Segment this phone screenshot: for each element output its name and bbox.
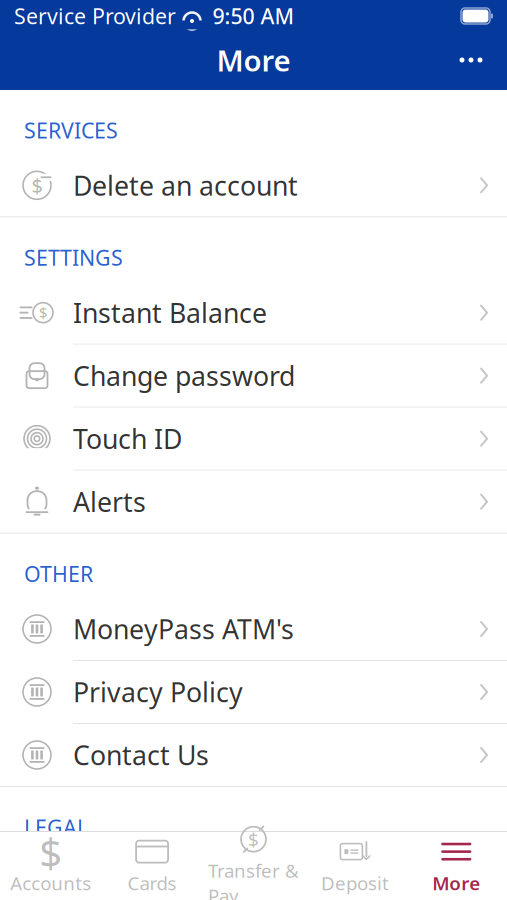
button[interactable]: More [406,832,507,900]
staticText: OTHER [24,560,93,588]
staticText: MoneyPass ATM's [73,611,294,647]
staticText: Service Provider [14,2,176,30]
button[interactable]: Deposit [304,832,406,900]
staticText: Privacy Policy [73,674,243,710]
staticText: Transfer & Pay [208,858,299,900]
staticText: Contact Us [73,737,209,773]
staticText: Touch ID [73,421,182,456]
button[interactable]: $ [0,154,507,216]
staticText: More [432,871,480,895]
staticText: LEGAL [24,813,88,841]
staticText: Change password [73,358,295,393]
staticText: Alerts [73,484,146,519]
button[interactable]: Change password [0,345,507,407]
staticText: $ [31,172,42,199]
staticText: More [216,40,290,79]
staticText: Accounts [10,871,91,895]
staticText: Deposit [321,871,389,895]
staticText: SETTINGS [24,243,123,272]
staticText: Instant Balance [73,295,267,330]
staticText: Delete an account [73,168,298,203]
button[interactable]: Privacy Policy [0,661,507,723]
button[interactable]: $ [0,832,101,900]
button[interactable]: $ [0,282,507,344]
staticText: Cards [128,871,177,895]
button[interactable]: More options [443,38,499,82]
button[interactable]: $ [203,832,304,900]
staticText: 9:50 AM [212,2,294,30]
staticText: $ [248,827,259,852]
button[interactable]: Touch ID [0,408,507,470]
button[interactable]: Contact Us [0,724,507,786]
button[interactable]: Cards [101,832,203,900]
staticText: $ [39,303,47,322]
button[interactable]: Alerts [0,471,507,533]
staticText: SERVICES [24,116,118,144]
staticText: $ [39,825,62,878]
button[interactable]: MoneyPass ATM's [0,598,507,660]
